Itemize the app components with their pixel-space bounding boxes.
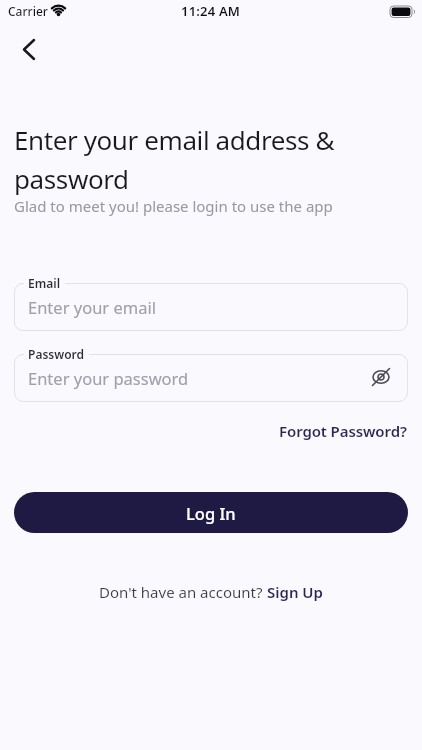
- staticText: Carrier: [8, 3, 48, 19]
- staticText: Log In: [186, 502, 236, 524]
- button[interactable]: Log In: [14, 492, 408, 533]
- button[interactable]: Enter your email: [14, 283, 408, 331]
- staticText: Email: [28, 275, 61, 291]
- staticText: 11:24 AM: [181, 2, 241, 20]
- button[interactable]: Forgot Password?: [270, 418, 412, 444]
- button[interactable]: Sign Up: [267, 582, 323, 602]
- staticText: Sign Up: [267, 582, 323, 602]
- staticText: Enter your email: [28, 296, 156, 318]
- staticText: Glad to meet you! please login to use th…: [14, 196, 333, 216]
- button[interactable]: Enter your password: [14, 354, 408, 402]
- staticText: Enter your email address & password: [14, 122, 335, 197]
- staticText: Don't have an account?: [99, 582, 267, 602]
- button[interactable]: [10, 32, 48, 66]
- staticText: Forgot Password?: [279, 421, 407, 441]
- staticText: Enter your password: [28, 367, 189, 389]
- staticText: Password: [28, 346, 85, 362]
